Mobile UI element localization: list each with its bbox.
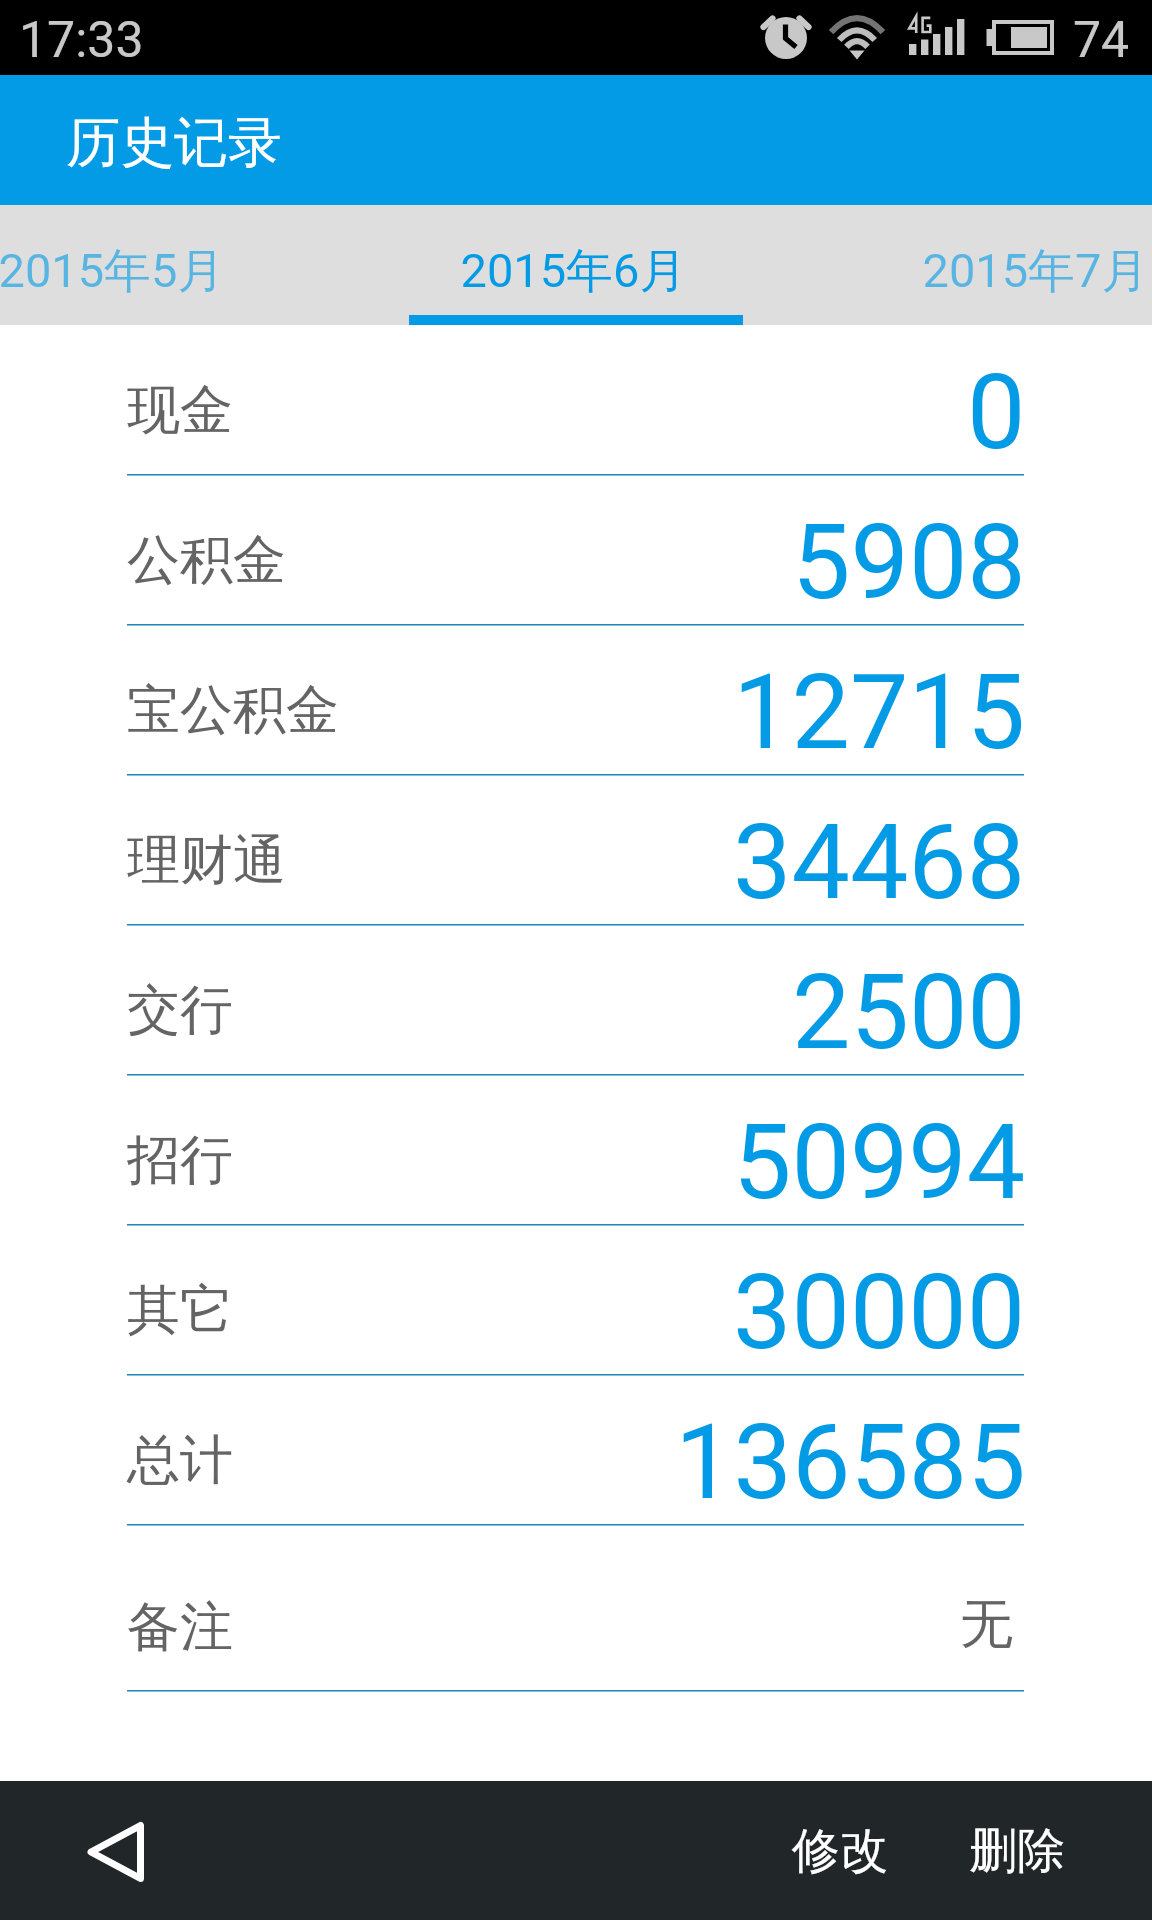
button[interactable]: 删除 — [949, 1781, 1085, 1920]
staticText: 招行 — [127, 1127, 233, 1194]
staticText: 公积金 — [127, 527, 286, 594]
staticText: 修改 — [792, 1821, 888, 1881]
staticText: 12715 — [733, 652, 1026, 774]
staticText: 历史记录 — [66, 109, 282, 177]
staticText: 74 — [1073, 11, 1130, 70]
button[interactable]: 现金 — [0, 325, 1152, 475]
staticText: 总计 — [127, 1427, 233, 1494]
staticText: 50994 — [733, 1102, 1026, 1224]
staticText: 34468 — [733, 802, 1026, 924]
button[interactable]: 招行 — [0, 1075, 1152, 1225]
staticText: 2500 — [792, 952, 1026, 1074]
staticText: 备注 — [127, 1594, 233, 1661]
staticText: 无 — [960, 1591, 1013, 1658]
button[interactable]: 公积金 — [0, 475, 1152, 625]
staticText: 2015年7月 — [922, 242, 1149, 301]
button[interactable]: 2015年6月 — [342, 205, 804, 325]
staticText: 理财通 — [127, 827, 286, 894]
button[interactable]: 2015年5月 — [0, 205, 342, 325]
staticText: 0 — [967, 352, 1026, 474]
button[interactable]: 修改 — [772, 1781, 908, 1920]
staticText: 5908 — [792, 502, 1026, 624]
staticText: 136585 — [675, 1402, 1026, 1524]
button[interactable]: 理财通 — [0, 775, 1152, 925]
button[interactable]: 宝公积金 — [0, 625, 1152, 775]
button[interactable]: Back — [66, 1801, 166, 1901]
staticText: 2015年6月 — [460, 242, 687, 301]
staticText: 30000 — [733, 1252, 1026, 1374]
button[interactable]: 2015年7月 — [804, 205, 1152, 325]
staticText: 宝公积金 — [127, 677, 339, 744]
button[interactable]: 备注 — [0, 1525, 1152, 1691]
button[interactable]: 交行 — [0, 925, 1152, 1075]
staticText: 17:33 — [19, 11, 144, 70]
staticText: 其它 — [127, 1277, 233, 1344]
button[interactable]: 总计 — [0, 1375, 1152, 1525]
staticText: 现金 — [127, 377, 233, 444]
staticText: 2015年5月 — [0, 242, 225, 301]
staticText: 交行 — [127, 977, 233, 1044]
staticText: 删除 — [969, 1821, 1065, 1881]
button[interactable]: 其它 — [0, 1225, 1152, 1375]
